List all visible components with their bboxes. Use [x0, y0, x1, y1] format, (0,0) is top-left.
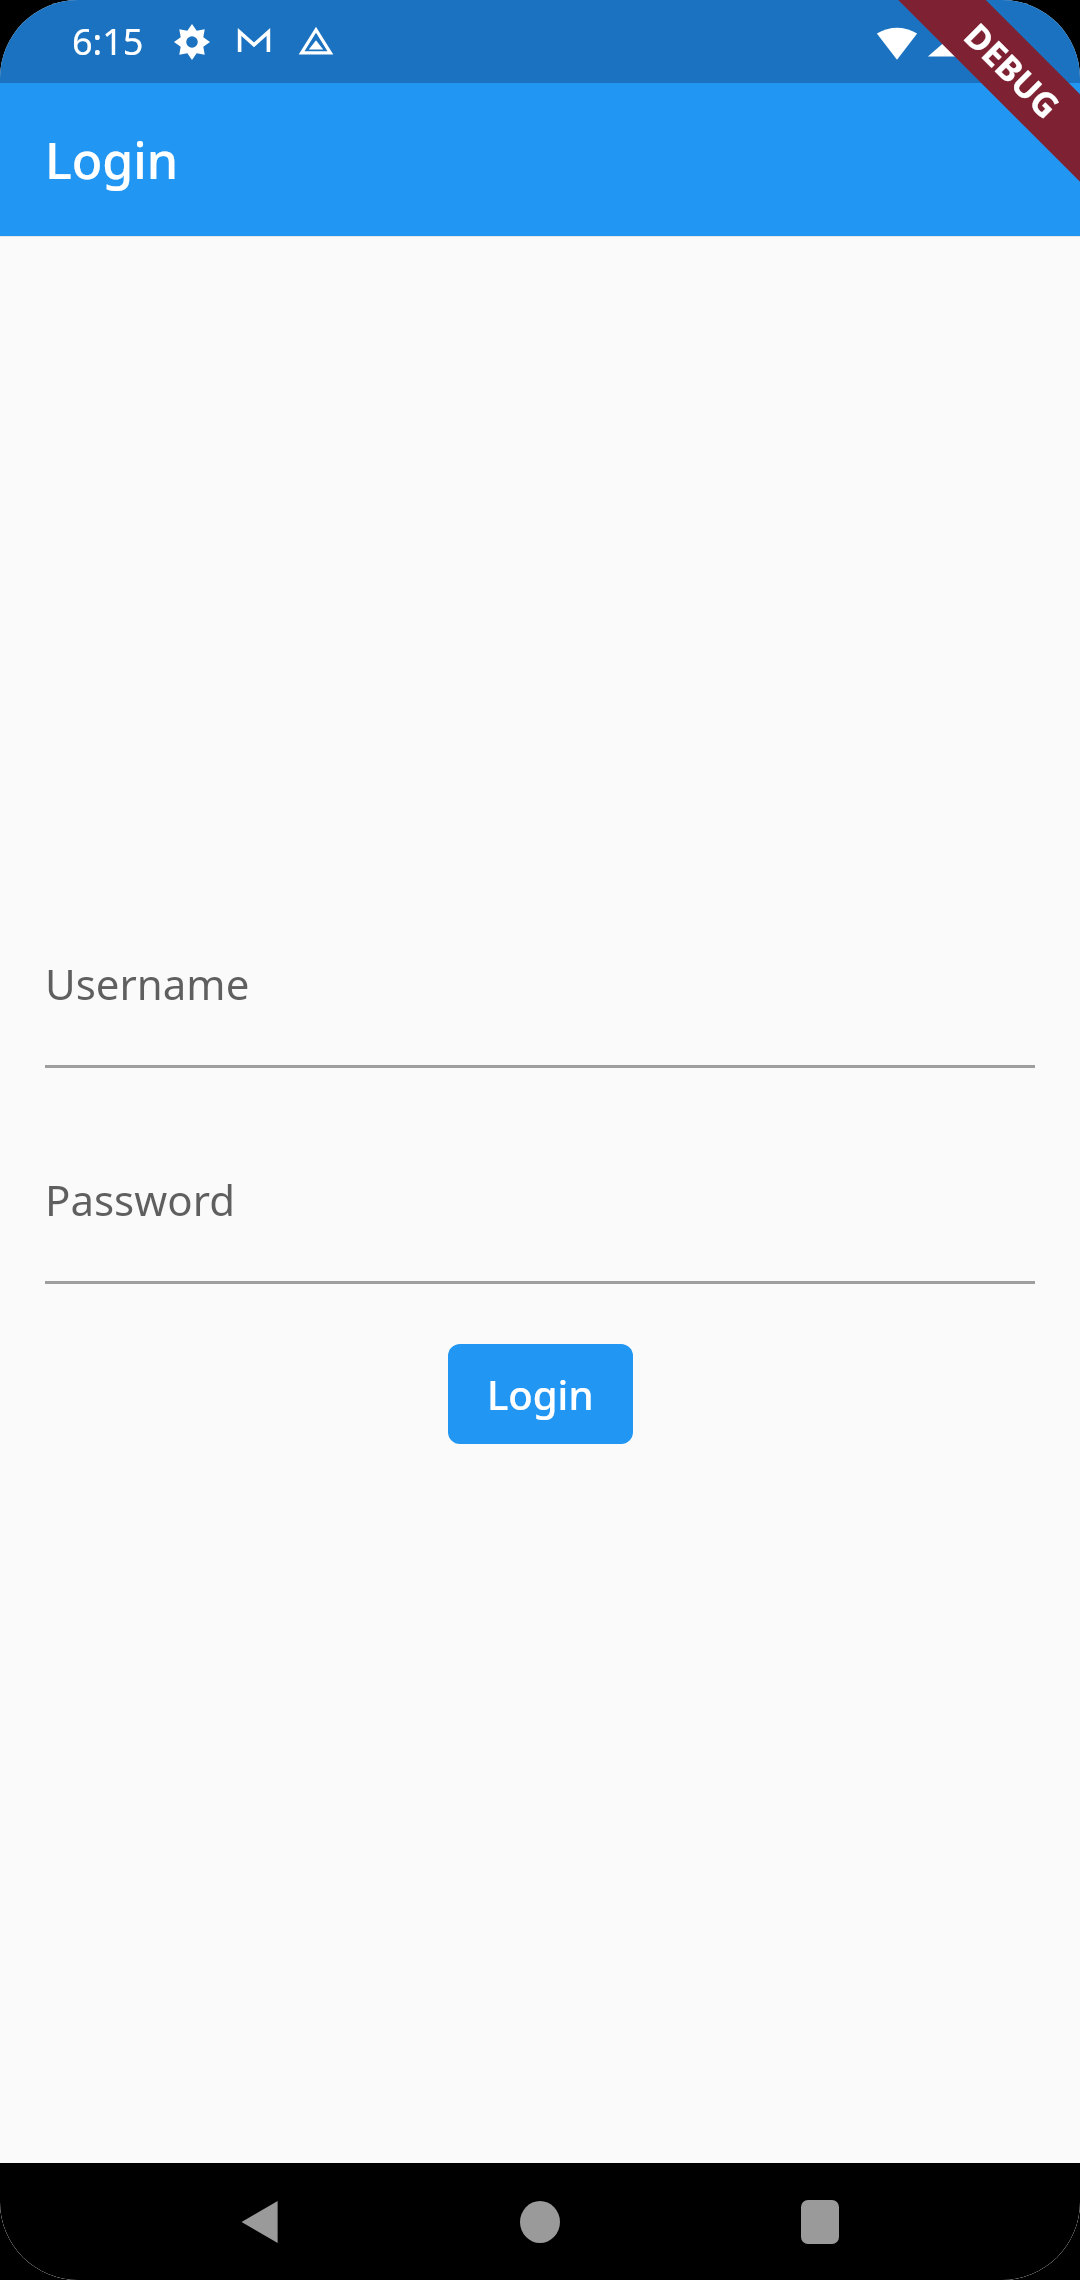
staticText: 6:15 — [72, 17, 144, 66]
staticText: DEBUG — [955, 13, 1070, 128]
button[interactable]: Username — [45, 955, 1035, 1068]
button[interactable]: Home — [485, 2167, 595, 2277]
staticText: Login — [487, 1367, 594, 1421]
staticText: Login — [45, 126, 179, 194]
button[interactable]: Recent apps — [765, 2167, 875, 2277]
staticText: Password — [45, 1171, 235, 1228]
staticText: Username — [45, 955, 250, 1012]
button[interactable]: Login — [448, 1344, 633, 1444]
button[interactable]: Password — [45, 1171, 1035, 1284]
button[interactable]: Back — [205, 2167, 315, 2277]
